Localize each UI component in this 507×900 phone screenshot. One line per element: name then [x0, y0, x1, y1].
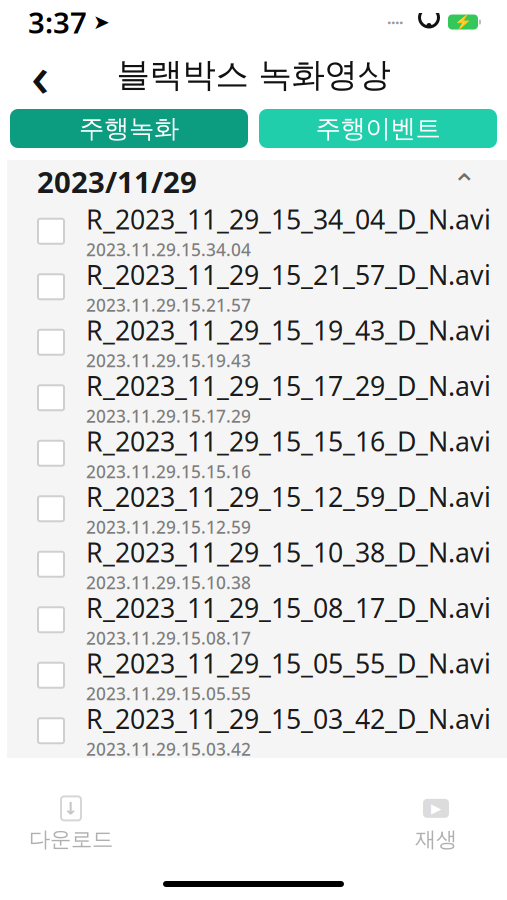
- staticText: 2023.11.29.15.12.59: [86, 515, 251, 538]
- staticText: 2023.11.29.15.05.55: [86, 682, 251, 705]
- button[interactable]: 주행이벤트: [259, 109, 497, 148]
- staticText: 2023.11.29.15.21.57: [86, 293, 251, 316]
- staticText: 2023.11.29.15.10.38: [86, 571, 251, 594]
- staticText: 2023.11.29.15.15.16: [86, 460, 251, 483]
- button[interactable]: R_2023_11_29_15_34_04_D_N.avi: [7, 203, 507, 259]
- staticText: R_2023_11_29_15_10_38_D_N.avi: [86, 534, 491, 570]
- button[interactable]: R_2023_11_29_15_03_42_D_N.avi: [7, 703, 507, 758]
- staticText: R_2023_11_29_15_05_55_D_N.avi: [86, 645, 491, 681]
- staticText: R_2023_11_29_15_03_42_D_N.avi: [86, 701, 491, 736]
- staticText: ▶: [431, 801, 441, 816]
- staticText: ⚡: [454, 14, 472, 30]
- button[interactable]: 2023/11/29: [7, 159, 507, 203]
- staticText: R_2023_11_29_15_08_17_D_N.avi: [86, 590, 491, 625]
- button[interactable]: Back: [12, 47, 68, 103]
- staticText: R_2023_11_29_15_19_43_D_N.avi: [86, 312, 491, 348]
- staticText: 주행녹화: [79, 113, 179, 144]
- button[interactable]: R_2023_11_29_15_08_17_D_N.avi: [7, 592, 507, 647]
- staticText: 2023.11.29.15.17.29: [86, 404, 251, 427]
- button[interactable]: R_2023_11_29_15_19_43_D_N.avi: [7, 314, 507, 370]
- button[interactable]: 주행녹화: [10, 109, 248, 148]
- staticText: 다운로드: [29, 826, 113, 853]
- button[interactable]: R_2023_11_29_15_12_59_D_N.avi: [7, 481, 507, 536]
- button[interactable]: ▶: [371, 793, 501, 855]
- staticText: ‹: [31, 38, 49, 112]
- staticText: ↓: [63, 799, 78, 818]
- staticText: 3:37: [28, 2, 87, 41]
- button[interactable]: R_2023_11_29_15_10_38_D_N.avi: [7, 536, 507, 592]
- button[interactable]: R_2023_11_29_15_15_16_D_N.avi: [7, 425, 507, 481]
- staticText: R_2023_11_29_15_12_59_D_N.avi: [86, 479, 491, 514]
- staticText: R_2023_11_29_15_17_29_D_N.avi: [86, 368, 491, 403]
- button[interactable]: ↓: [6, 793, 136, 855]
- staticText: ⌃: [452, 168, 477, 201]
- staticText: 2023.11.29.15.19.43: [86, 349, 251, 372]
- staticText: ····: [387, 11, 403, 33]
- staticText: R_2023_11_29_15_21_57_D_N.avi: [86, 257, 491, 292]
- staticText: 주행이벤트: [315, 113, 440, 144]
- staticText: 2023.11.29.15.08.17: [86, 626, 251, 649]
- staticText: 블랙박스 녹화영상: [116, 54, 390, 95]
- staticText: 2023.11.29.15.03.42: [86, 737, 251, 760]
- staticText: ➤: [93, 11, 110, 33]
- button[interactable]: R_2023_11_29_15_17_29_D_N.avi: [7, 370, 507, 425]
- staticText: R_2023_11_29_15_15_16_D_N.avi: [86, 423, 491, 459]
- staticText: 2023.11.29.15.34.04: [86, 238, 251, 261]
- staticText: 2023/11/29: [37, 162, 197, 201]
- button[interactable]: R_2023_11_29_15_05_55_D_N.avi: [7, 647, 507, 703]
- button[interactable]: R_2023_11_29_15_21_57_D_N.avi: [7, 259, 507, 314]
- staticText: R_2023_11_29_15_34_04_D_N.avi: [86, 201, 491, 237]
- staticText: 재생: [415, 826, 457, 853]
